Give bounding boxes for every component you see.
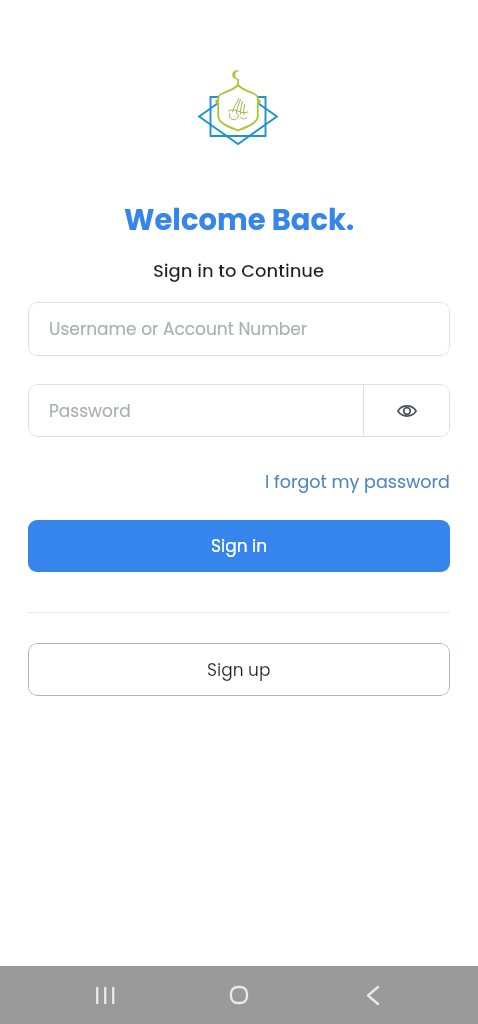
staticText: Password (49, 399, 131, 423)
button[interactable]: Password (28, 384, 363, 437)
button[interactable]: Username or Account Number (28, 302, 450, 356)
button[interactable]: Sign in (28, 520, 450, 572)
staticText: Username or Account Number (49, 317, 308, 341)
button[interactable]: Home (210, 966, 268, 1024)
button[interactable]: Recent apps (76, 966, 134, 1024)
button[interactable]: Show password (364, 384, 450, 437)
button[interactable]: Back (344, 966, 402, 1024)
button[interactable]: I forgot my password (265, 470, 450, 495)
staticText: Sign in to Continue (153, 258, 325, 283)
staticText: Sign up (207, 658, 271, 682)
staticText: Welcome Back. (124, 200, 355, 241)
button[interactable]: Sign up (28, 643, 450, 696)
staticText: Sign in (211, 534, 268, 558)
